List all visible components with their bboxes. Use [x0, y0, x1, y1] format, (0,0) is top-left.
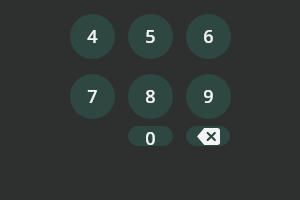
staticText: 6 [203, 24, 214, 49]
button[interactable]: 7 [70, 74, 115, 119]
button[interactable]: Backspace [186, 126, 230, 146]
staticText: 7 [87, 84, 98, 109]
button[interactable]: 4 [70, 14, 115, 59]
staticText: 0 [145, 126, 156, 146]
button[interactable]: 6 [186, 14, 231, 59]
staticText: 4 [87, 24, 98, 49]
button[interactable]: 9 [186, 74, 231, 119]
staticText: 5 [145, 24, 156, 49]
staticText: 8 [145, 84, 156, 109]
button[interactable]: 8 [128, 74, 173, 119]
button[interactable]: 0 [128, 126, 173, 146]
staticText: 9 [203, 84, 214, 109]
button[interactable]: 5 [128, 14, 173, 59]
